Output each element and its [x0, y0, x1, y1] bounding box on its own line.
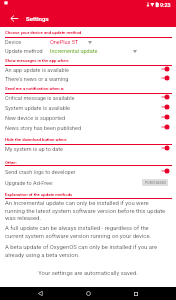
button[interactable]: Critical message is available — [0, 92, 176, 102]
button[interactable]: Home — [82, 287, 95, 300]
staticText: There's news or a warning — [5, 76, 69, 82]
button[interactable]: Recent apps — [129, 287, 142, 300]
staticText: PURCHASED — [145, 181, 166, 185]
staticText: Choose your device and update method — [5, 30, 82, 35]
staticText: An incremental update can only be instal… — [5, 200, 167, 221]
staticText: Device — [5, 39, 22, 45]
staticText: An app update is available — [5, 67, 69, 73]
button[interactable]: Navigate up — [6, 10, 23, 27]
button[interactable]: News story has been published — [0, 122, 176, 132]
staticText: Send crash logs to developer — [5, 169, 76, 175]
staticText: My system is up to date — [5, 146, 64, 152]
staticText: Show messages in the app when: — [5, 58, 70, 63]
staticText: OnePlus 5T — [50, 39, 79, 45]
staticText: 19:23 — [157, 2, 171, 8]
button[interactable]: Device — [0, 39, 176, 48]
staticText: Update method — [5, 48, 43, 54]
staticText: A beta update of OxygenOS can only be in… — [5, 244, 167, 258]
staticText: A full update can be always installed - … — [5, 225, 167, 239]
button[interactable]: PURCHASED — [142, 179, 168, 186]
button[interactable]: My system is up to date — [0, 143, 176, 153]
button[interactable]: System update is available — [0, 102, 176, 112]
staticText: Upgrade to Ad-Free: — [5, 180, 54, 186]
staticText: Hide the download button when: — [5, 137, 68, 142]
staticText: Incremental update — [50, 48, 98, 54]
button[interactable]: Send crash logs to developer — [0, 166, 176, 176]
staticText: System update is available — [5, 105, 71, 111]
staticText: Other: — [5, 160, 17, 165]
staticText: Your settings are automatically saved. — [0, 270, 176, 277]
staticText: Explanation of the update methods — [5, 192, 73, 197]
button[interactable]: There's news or a warning — [0, 73, 176, 83]
staticText: New device is supported — [5, 115, 66, 121]
staticText: Send me a notification when a: — [5, 86, 65, 91]
button[interactable]: New device is supported — [0, 112, 176, 122]
button[interactable]: An app update is available — [0, 64, 176, 74]
staticText: News story has been published — [5, 125, 82, 131]
button[interactable]: Update method — [0, 48, 176, 57]
button[interactable]: Back — [34, 287, 47, 300]
staticText: Settings — [26, 15, 49, 22]
staticText: Critical message is available — [5, 95, 75, 101]
